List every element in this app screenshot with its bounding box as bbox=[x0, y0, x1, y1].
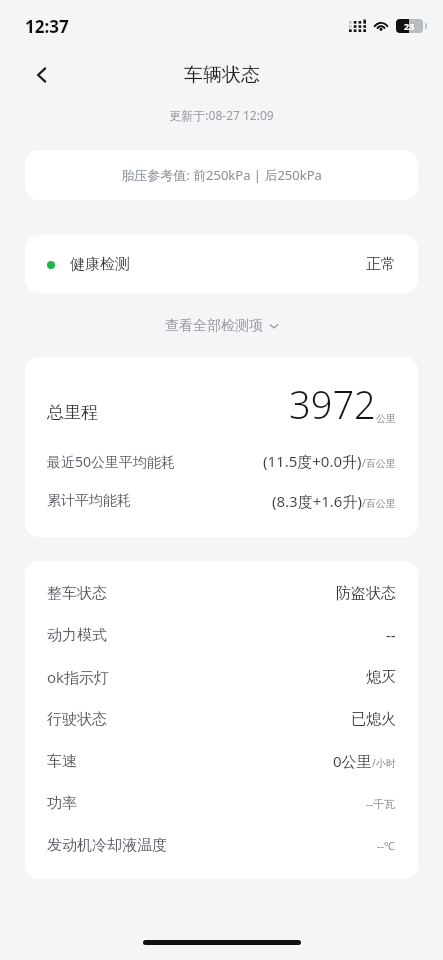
staticText: (11.5度+0.0升) bbox=[263, 451, 362, 471]
staticText: 车辆状态 bbox=[184, 63, 260, 87]
staticText: 累计平均能耗 bbox=[47, 492, 131, 510]
staticText: 车速 bbox=[47, 752, 77, 771]
staticText: 功率 bbox=[47, 794, 77, 813]
button[interactable]: ok指示灯 bbox=[47, 656, 396, 698]
button[interactable]: 功率 bbox=[47, 782, 396, 824]
staticText: --千瓦 bbox=[366, 796, 396, 811]
staticText: 正常 bbox=[366, 255, 396, 274]
staticText: 动力模式 bbox=[47, 626, 107, 645]
staticText: ok指示灯 bbox=[47, 667, 110, 687]
staticText: 23 bbox=[404, 20, 415, 32]
button[interactable]: 行驶状态 bbox=[47, 698, 396, 740]
staticText: 防盗状态 bbox=[336, 584, 396, 603]
button[interactable]: 整车状态 bbox=[47, 572, 396, 614]
staticText: 已熄火 bbox=[351, 710, 396, 729]
button[interactable]: 动力模式 bbox=[47, 614, 396, 656]
staticText: (8.3度+1.6升) bbox=[272, 491, 362, 511]
staticText: 行驶状态 bbox=[47, 710, 107, 729]
staticText: 胎压参考值: 前250kPa | 后250kPa bbox=[25, 166, 418, 184]
button[interactable]: 发动机冷却液温度 bbox=[47, 824, 396, 866]
staticText: 总里程 bbox=[47, 402, 98, 423]
staticText: 3972 bbox=[289, 378, 376, 430]
staticText: 整车状态 bbox=[47, 584, 107, 603]
button[interactable]: Back bbox=[22, 55, 62, 95]
staticText: 最近50公里平均能耗 bbox=[47, 452, 176, 471]
staticText: 0公里 bbox=[333, 751, 372, 771]
staticText: 发动机冷却液温度 bbox=[47, 836, 167, 855]
staticText: /百公里 bbox=[362, 456, 396, 470]
staticText: 健康检测 bbox=[70, 255, 130, 274]
button[interactable]: 查看全部检测项 bbox=[157, 313, 287, 339]
staticText: -- bbox=[386, 625, 396, 645]
staticText: 12:37 bbox=[25, 15, 69, 38]
staticText: /百公里 bbox=[362, 496, 396, 510]
button[interactable]: 健康检测 bbox=[25, 235, 418, 293]
staticText: 更新于:08-27 12:09 bbox=[0, 107, 443, 123]
staticText: --℃ bbox=[377, 838, 396, 853]
staticText: /小时 bbox=[372, 756, 396, 770]
staticText: 查看全部检测项 bbox=[165, 317, 263, 335]
staticText: 熄灭 bbox=[366, 668, 396, 687]
staticText: 公里 bbox=[376, 412, 396, 425]
button[interactable]: 车速 bbox=[47, 740, 396, 782]
